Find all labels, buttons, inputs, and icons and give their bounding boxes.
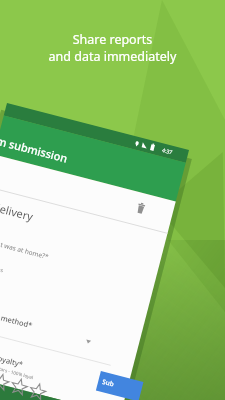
- button[interactable]: Share reports and data immediately: [0, 0, 225, 400]
